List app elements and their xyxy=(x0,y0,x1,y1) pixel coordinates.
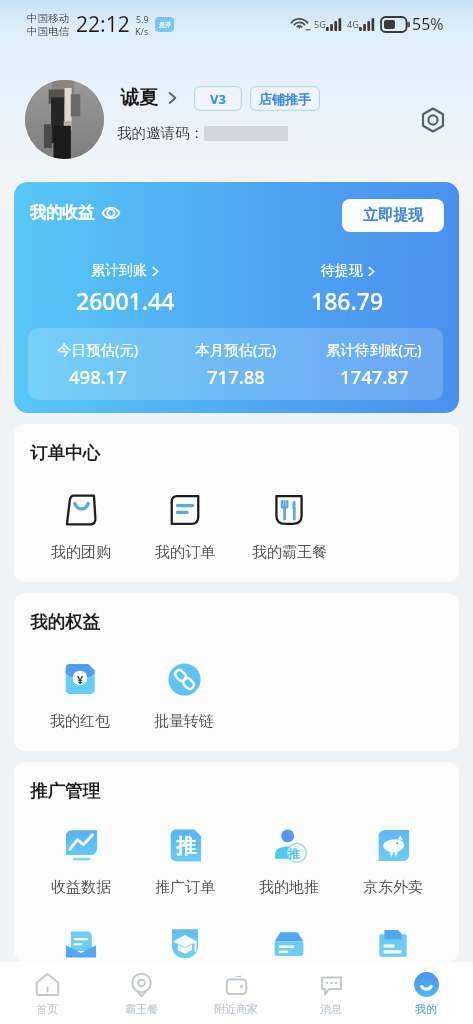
staticText: 本月预估(元) xyxy=(195,339,277,359)
staticText: 收益数据 xyxy=(51,878,111,897)
staticText: 我的权益 xyxy=(30,611,100,633)
button[interactable] xyxy=(133,924,237,962)
button[interactable]: 推 xyxy=(133,826,237,897)
staticText: 订单中心 xyxy=(30,442,100,464)
button[interactable] xyxy=(28,924,133,962)
staticText: 55% xyxy=(412,13,444,35)
button[interactable]: 累计到账 xyxy=(14,262,236,316)
button[interactable]: 本月预估(元) xyxy=(167,328,305,400)
staticText: ¥ xyxy=(77,672,84,687)
staticText: 1747.87 xyxy=(340,364,409,389)
button[interactable]: V3 xyxy=(194,86,242,111)
button[interactable] xyxy=(237,924,341,962)
staticText: 我的地推 xyxy=(259,878,319,897)
button[interactable]: 附近商家 xyxy=(188,962,283,1024)
button[interactable]: 京东外卖 xyxy=(341,826,445,897)
button[interactable]: 我的邀请码： xyxy=(117,122,288,144)
button[interactable]: 首页 xyxy=(0,962,94,1024)
staticText: 498.17 xyxy=(69,364,127,389)
staticText: 我的团购 xyxy=(51,543,111,562)
staticText: 悬浮 xyxy=(159,21,171,29)
button[interactable]: 我的收益 xyxy=(14,182,459,413)
button[interactable]: 我的 xyxy=(378,962,473,1024)
staticText: 今日预估(元) xyxy=(57,339,139,359)
button[interactable]: 消息 xyxy=(283,962,378,1024)
button[interactable]: 待提现 xyxy=(236,262,459,316)
staticText: 诚夏 xyxy=(120,86,158,110)
staticText: 中国电信 xyxy=(27,25,69,38)
staticText: 推 xyxy=(288,847,300,861)
staticText: 我的红包 xyxy=(50,712,110,731)
staticText: 26001.44 xyxy=(76,285,175,316)
staticText: 我的 xyxy=(415,1002,437,1016)
staticText: K/s xyxy=(135,25,149,37)
staticText: 立即提现 xyxy=(363,206,423,225)
staticText: V3 xyxy=(210,90,226,108)
staticText: 京东外卖 xyxy=(363,878,423,897)
staticText: 店铺推手 xyxy=(259,91,311,107)
button[interactable]: 店铺推手 xyxy=(250,86,320,111)
staticText: 5.9 xyxy=(136,13,149,25)
staticText: 5G xyxy=(314,18,326,30)
button[interactable]: 推 xyxy=(237,826,341,897)
staticText: 待提现 xyxy=(321,262,363,280)
staticText: 累计到账 xyxy=(91,262,147,280)
staticText: 中国移动 xyxy=(27,12,69,25)
staticText: 22:12 xyxy=(76,10,130,39)
button[interactable]: 今日预估(元) xyxy=(28,328,167,400)
staticText: 首页 xyxy=(36,1002,58,1016)
button[interactable]: 我的团购 xyxy=(28,491,133,562)
button[interactable]: 霸王餐 xyxy=(94,962,188,1024)
button[interactable]: 收益数据 xyxy=(28,826,133,897)
staticText: 霸王餐 xyxy=(125,1002,158,1016)
staticText: 我的收益 xyxy=(30,203,94,223)
staticText: 附近商家 xyxy=(214,1002,258,1016)
staticText: 推广管理 xyxy=(30,780,100,802)
staticText: 消息 xyxy=(320,1002,342,1016)
button[interactable]: 我的订单 xyxy=(133,491,237,562)
staticText: 批量转链 xyxy=(154,712,214,731)
staticText: 推 xyxy=(176,834,196,859)
staticText: 我的霸王餐 xyxy=(252,543,327,562)
button[interactable]: ¥ xyxy=(28,660,132,731)
staticText: 我的邀请码： xyxy=(117,124,204,142)
button[interactable] xyxy=(25,80,104,159)
button[interactable]: 诚夏 xyxy=(120,86,177,110)
staticText: 累计待到账(元) xyxy=(326,339,422,359)
button[interactable]: 批量转链 xyxy=(132,660,236,731)
staticText: 我的订单 xyxy=(155,543,215,562)
staticText: 推广订单 xyxy=(155,878,215,897)
button[interactable] xyxy=(341,924,445,962)
staticText: 717.88 xyxy=(207,364,265,389)
button[interactable]: Settings xyxy=(419,106,447,134)
staticText: 186.79 xyxy=(311,285,384,316)
button[interactable]: 我的霸王餐 xyxy=(237,491,341,562)
staticText: 4G xyxy=(347,18,359,30)
button[interactable]: 累计待到账(元) xyxy=(305,328,443,400)
button[interactable]: 立即提现 xyxy=(342,199,444,232)
